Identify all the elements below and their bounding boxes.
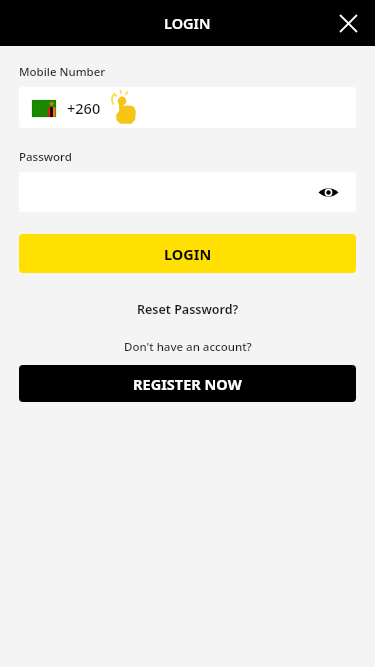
staticText: Don't have an account? [124, 339, 252, 355]
staticText: LOGIN [164, 244, 212, 264]
button[interactable]: Show password [314, 178, 342, 206]
button[interactable]: +260 [19, 87, 356, 128]
staticText: Mobile Number [19, 64, 106, 80]
staticText: REGISTER NOW [133, 374, 242, 394]
staticText: Reset Password? [137, 301, 239, 318]
button[interactable]: Reset Password? [127, 298, 249, 321]
staticText: LOGIN [164, 13, 211, 33]
button[interactable]: REGISTER NOW [19, 365, 356, 402]
button[interactable]: LOGIN [19, 234, 356, 273]
other: Select country code [110, 92, 140, 124]
staticText: +260 [67, 98, 101, 118]
button[interactable]: Close [331, 6, 365, 40]
button[interactable]: Show password [19, 172, 356, 212]
staticText: Password [19, 149, 72, 165]
